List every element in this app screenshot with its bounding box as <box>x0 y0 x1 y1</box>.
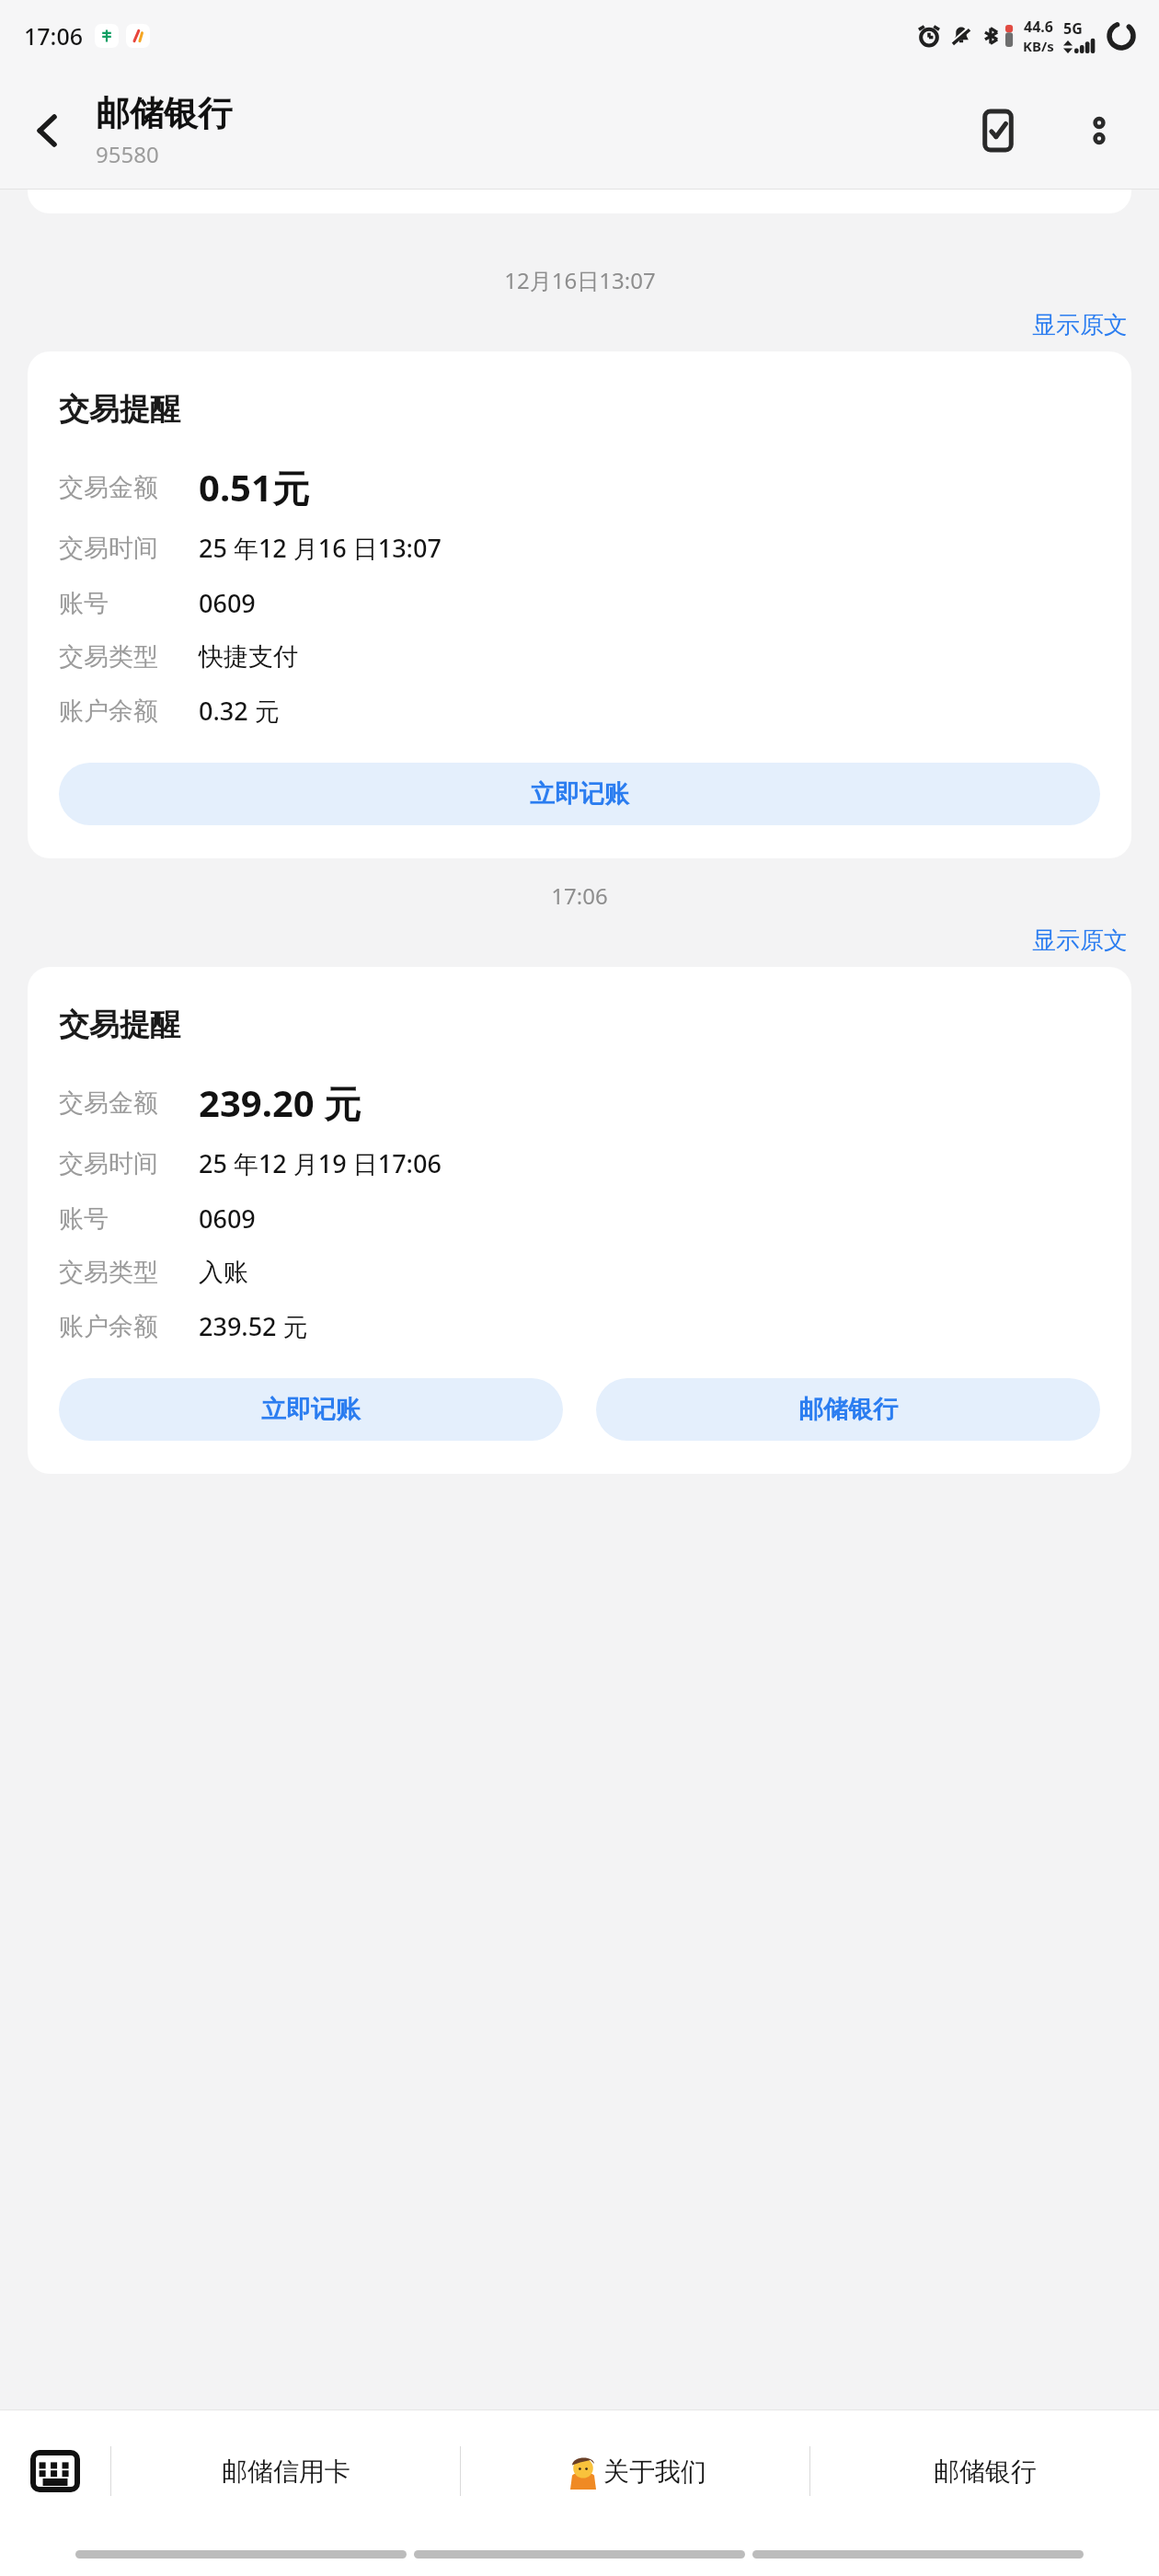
button[interactable]: 交易提醒 <box>28 351 1131 858</box>
button[interactable]: 显示原文 <box>1028 922 1131 960</box>
staticText: 账号 <box>59 1203 109 1235</box>
staticText: 交易时间 <box>59 533 158 564</box>
button[interactable]: More options <box>1049 80 1150 181</box>
button[interactable]: 立即记账 <box>59 763 1100 825</box>
staticText: 25 年12 月19 日17:06 <box>199 1146 442 1180</box>
button[interactable]: 关于我们 <box>461 2410 809 2532</box>
staticText: 账号 <box>59 588 109 619</box>
button[interactable]: 显示原文 <box>1028 306 1131 344</box>
staticText: 快捷支付 <box>199 641 298 673</box>
staticText: 0.32 元 <box>199 694 280 728</box>
staticText: 0.51元 <box>199 462 309 512</box>
button[interactable]: 邮储信用卡 <box>111 2410 460 2532</box>
staticText: 44.6 <box>1024 17 1053 37</box>
staticText: 5G <box>1063 18 1083 39</box>
staticText: 239.52 元 <box>199 1309 308 1343</box>
staticText: 17:06 <box>551 880 608 911</box>
staticText: 显示原文 <box>1032 310 1128 340</box>
staticText: 邮储银行 <box>934 2455 1037 2488</box>
button[interactable]: 立即记账 <box>59 1378 563 1441</box>
button[interactable]: Select messages <box>947 80 1049 181</box>
staticText: 显示原文 <box>1032 926 1128 956</box>
staticText: 交易金额 <box>59 472 158 503</box>
staticText: 立即记账 <box>261 1394 361 1425</box>
staticText: 立即记账 <box>530 778 629 810</box>
button[interactable]: Keyboard <box>0 2410 110 2532</box>
staticText: 0609 <box>199 586 256 620</box>
staticText: 25 年12 月16 日13:07 <box>199 531 442 565</box>
staticText: 交易金额 <box>59 1087 158 1119</box>
staticText: 交易时间 <box>59 1148 158 1179</box>
button[interactable]: 邮储银行 <box>810 2410 1159 2532</box>
staticText: 关于我们 <box>603 2455 706 2488</box>
button[interactable]: 邮储银行 <box>596 1378 1100 1441</box>
staticText: 0609 <box>199 1202 256 1236</box>
staticText: 交易提醒 <box>59 1006 180 1044</box>
button[interactable]: Back <box>0 72 96 190</box>
staticText: 邮储信用卡 <box>222 2455 350 2488</box>
staticText: 邮储银行 <box>96 92 232 135</box>
staticText: KB/s <box>1023 37 1054 55</box>
staticText: 交易类型 <box>59 641 158 673</box>
staticText: 账户余额 <box>59 1311 158 1342</box>
staticText: 交易提醒 <box>59 390 180 429</box>
staticText: 交易类型 <box>59 1257 158 1288</box>
staticText: 17:06 <box>24 20 84 52</box>
staticText: 12月16日13:07 <box>504 265 656 295</box>
staticText: 入账 <box>199 1257 248 1288</box>
staticText: 账户余额 <box>59 696 158 727</box>
button[interactable]: 交易提醒 <box>28 967 1131 1474</box>
staticText: 邮储银行 <box>798 1394 898 1425</box>
staticText: 95580 <box>96 139 159 169</box>
staticText: 239.20 元 <box>199 1077 361 1128</box>
